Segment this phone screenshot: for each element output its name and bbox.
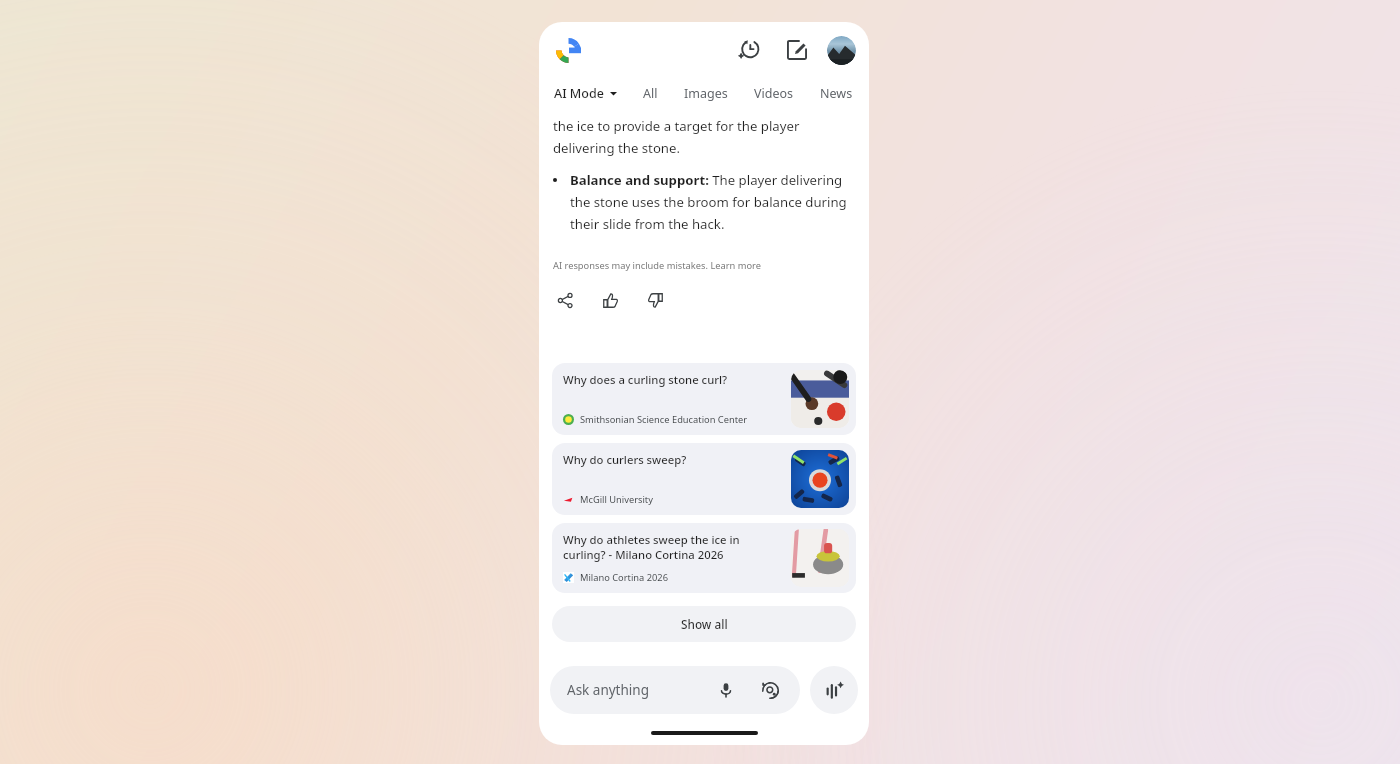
button[interactable]: New chat [780, 33, 814, 67]
staticText: the ice to provide a target for the play… [553, 117, 800, 157]
staticText: Show all [681, 616, 728, 632]
staticText: Balance and support: The player deliveri… [570, 171, 855, 233]
staticText: Ask anything [567, 681, 649, 699]
button[interactable]: History [732, 33, 766, 67]
button[interactable]: Google [552, 34, 584, 66]
staticText: All [643, 85, 658, 102]
staticText: Why do athletes sweep the ice in curling… [563, 532, 740, 562]
staticText: Videos [754, 85, 794, 102]
staticText: McGill University [580, 493, 653, 506]
button[interactable]: Thumb up [596, 286, 624, 314]
button[interactable]: Show all [552, 606, 856, 642]
button[interactable]: Account [827, 36, 856, 65]
button[interactable]: Images [681, 82, 731, 105]
button[interactable]: Share [551, 286, 579, 314]
button[interactable]: Videos [751, 82, 797, 105]
button[interactable]: Why do curlers sweep? [552, 443, 856, 515]
staticText: News [820, 85, 853, 102]
staticText: Why does a curling stone curl? [563, 372, 728, 387]
button[interactable]: AI Mode [552, 83, 619, 104]
staticText: AI Mode [554, 85, 604, 102]
staticText: AI responses may include mistakes. Learn… [553, 259, 761, 272]
staticText: Milano Cortina 2026 [580, 571, 668, 584]
staticText: Why do curlers sweep? [563, 452, 687, 467]
button[interactable]: News [817, 82, 856, 105]
button[interactable]: Thumb down [641, 286, 669, 314]
button[interactable]: Google Lens [757, 677, 783, 703]
button[interactable]: Why do athletes sweep the ice in curling… [552, 523, 856, 593]
button[interactable]: Ask anything [550, 666, 800, 714]
button[interactable]: Live voice [810, 666, 858, 714]
staticText: Smithsonian Science Education Center [580, 413, 748, 426]
button[interactable]: All [640, 82, 661, 105]
button[interactable]: Why does a curling stone curl? [552, 363, 856, 435]
staticText: Images [684, 85, 728, 102]
button[interactable]: Voice search [713, 677, 739, 703]
